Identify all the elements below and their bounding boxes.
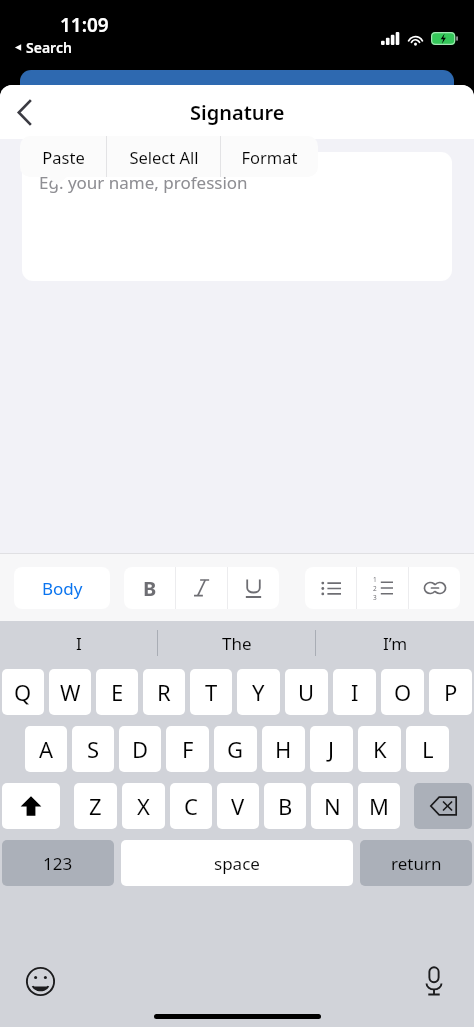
button[interactable]: S [72,726,114,772]
button[interactable]: I [333,669,376,715]
staticText: space [214,852,260,875]
button[interactable]: Dictation [412,959,456,1003]
button[interactable]: I [0,621,158,665]
button[interactable]: U [285,669,328,715]
staticText: J [328,734,335,764]
button[interactable]: X [122,783,165,829]
staticText: D [132,734,149,764]
button[interactable]: V [217,783,259,829]
button[interactable]: The [158,621,316,665]
button[interactable]: Emoji keyboard [18,959,62,1003]
staticText: V [231,791,245,821]
button[interactable]: R [143,669,185,715]
button[interactable]: L [406,726,449,772]
staticText: W [60,677,81,707]
button[interactable]: G [214,726,257,772]
button[interactable]: Eg. your name, profession [22,152,452,281]
staticText: Select All [129,146,199,168]
button[interactable]: F [166,726,209,772]
button[interactable]: A [25,726,67,772]
staticText: B [143,575,157,602]
staticText: The [222,632,252,655]
staticText: Q [14,677,32,707]
staticText: A [39,734,54,764]
button[interactable]: Back [0,88,48,136]
button[interactable]: E [96,669,138,715]
staticText: C [184,791,198,821]
button[interactable]: P [429,669,472,715]
button[interactable]: Shift [2,783,60,829]
button[interactable]: W [49,669,91,715]
button[interactable]: K [358,726,401,772]
button[interactable]: T [190,669,232,715]
staticText: M [369,791,389,821]
button[interactable]: Body [14,567,110,609]
staticText: Z [89,791,102,821]
button[interactable]: H [262,726,305,772]
staticText: O [394,677,412,707]
button[interactable]: M [358,783,400,829]
staticText: I’m [383,632,408,655]
staticText: F [182,734,194,764]
staticText: 123 [43,852,73,875]
staticText: X [137,791,150,821]
button[interactable]: Underline [228,567,279,609]
staticText: S [87,734,100,764]
staticText: T [205,677,218,707]
staticText: I [76,632,82,655]
button[interactable]: O [381,669,424,715]
staticText: R [157,677,171,707]
staticText: U [298,677,315,707]
button[interactable]: N [311,783,353,829]
button[interactable]: C [170,783,212,829]
staticText: Paste [42,146,85,168]
button[interactable]: I’m [316,621,474,665]
staticText: 11:09 [60,12,109,38]
button[interactable]: 123 [2,840,114,886]
staticText: Signature [190,99,285,126]
staticText: G [227,734,244,764]
staticText: P [444,677,458,707]
staticText: 2 [373,584,377,593]
button[interactable]: Select All [107,136,220,177]
button[interactable]: Numbered list [357,567,408,609]
staticText: Y [252,677,265,707]
button[interactable]: Z [74,783,117,829]
staticText: I [351,677,359,707]
staticText: L [422,734,434,764]
staticText: B [278,791,293,821]
staticText: E [111,677,124,707]
button[interactable]: Bulleted list [305,567,356,609]
button[interactable]: B [264,783,306,829]
staticText: K [373,734,387,764]
staticText: 1 [373,575,377,584]
staticText: N [324,791,341,821]
button[interactable]: Backspace [414,783,472,829]
staticText: H [275,734,292,764]
button[interactable]: space [121,840,353,886]
button[interactable]: J [310,726,353,772]
button[interactable]: Italic [176,567,227,609]
button[interactable]: Bold [124,567,175,609]
button[interactable]: Insert link [409,567,460,609]
staticText: Eg. your name, profession [39,171,248,194]
staticText: Search [26,38,72,57]
staticText: return [391,852,442,875]
button[interactable]: Format [221,136,318,177]
staticText: Format [241,146,298,168]
button[interactable]: return [360,840,472,886]
button[interactable]: Y [237,669,280,715]
button[interactable]: D [119,726,161,772]
staticText: 3 [373,593,377,602]
staticText: Body [42,577,83,600]
button[interactable]: Q [2,669,44,715]
button[interactable]: Paste [20,136,106,177]
